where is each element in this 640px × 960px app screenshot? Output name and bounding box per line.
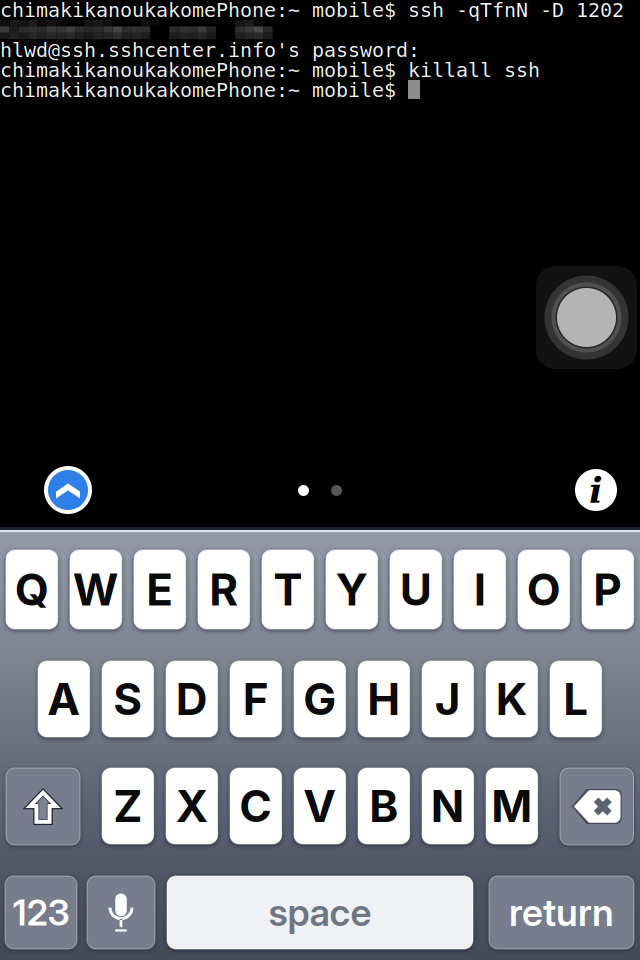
button[interactable]: Dictation <box>87 876 155 949</box>
staticText: i <box>589 469 603 511</box>
button[interactable]: 123 <box>5 876 77 949</box>
button[interactable]: D <box>166 661 218 737</box>
button[interactable]: V <box>294 768 346 844</box>
staticText: chimakikanoukakomePhone:~ mobile$ ssh -q… <box>0 0 624 22</box>
button[interactable]: G <box>294 661 346 737</box>
staticText: chimakikanoukakomePhone:~ mobile$ <box>0 78 396 102</box>
staticText: return <box>509 890 614 935</box>
staticText: C <box>239 779 272 833</box>
staticText: O <box>527 563 561 616</box>
staticText: K <box>496 672 528 726</box>
staticText: A <box>47 672 80 726</box>
button[interactable]: R <box>198 550 250 629</box>
button[interactable]: Z <box>102 768 154 844</box>
staticText: E <box>146 563 173 616</box>
staticText: V <box>303 779 336 833</box>
button[interactable]: U <box>390 550 442 629</box>
button[interactable]: B <box>358 768 410 844</box>
staticText: U <box>400 563 432 616</box>
button[interactable]: space <box>167 876 473 949</box>
staticText: Q <box>15 563 49 616</box>
staticText: L <box>563 672 588 726</box>
staticText: Y <box>336 563 368 616</box>
staticText: T <box>273 563 302 616</box>
button[interactable]: J <box>422 661 474 737</box>
button[interactable]: T <box>262 550 314 629</box>
staticText: space <box>268 890 371 935</box>
staticText: N <box>431 779 465 833</box>
button[interactable]: return <box>489 876 634 949</box>
staticText: J <box>435 672 461 726</box>
staticText: D <box>176 672 208 726</box>
staticText: X <box>176 779 208 833</box>
button[interactable]: Delete <box>560 768 633 845</box>
button[interactable]: A <box>38 661 90 737</box>
button[interactable]: C <box>230 768 282 844</box>
staticText: chimakikanoukakomePhone:~ mobile$ killal… <box>0 58 540 82</box>
button[interactable]: Q <box>6 550 58 629</box>
staticText: G <box>303 672 336 726</box>
button[interactable]: E <box>134 550 186 629</box>
button[interactable]: AssistiveTouch <box>536 266 637 369</box>
button[interactable]: Show keyboard accessory <box>44 466 92 514</box>
staticText: 123 <box>12 891 69 934</box>
button[interactable]: S <box>102 661 154 737</box>
staticText: M <box>491 779 532 833</box>
button[interactable]: H <box>358 661 410 737</box>
staticText: F <box>243 672 269 726</box>
button[interactable]: L <box>550 661 602 737</box>
button[interactable]: F <box>230 661 282 737</box>
button[interactable]: M <box>486 768 538 844</box>
button[interactable]: N <box>422 768 474 844</box>
button[interactable]: O <box>518 550 570 629</box>
staticText: W <box>73 563 119 616</box>
button[interactable]: I <box>454 550 506 629</box>
staticText: R <box>209 563 238 616</box>
staticText: Z <box>113 779 142 833</box>
button[interactable]: Shift <box>6 768 80 845</box>
button[interactable]: X <box>166 768 218 844</box>
button[interactable]: P <box>582 550 634 629</box>
staticText: H <box>367 672 400 726</box>
staticText: B <box>369 779 398 833</box>
staticText: hlwd@ssh.sshcenter.info's password: <box>0 38 420 62</box>
staticText: I <box>474 563 486 616</box>
button[interactable]: Y <box>326 550 378 629</box>
staticText: S <box>113 672 142 726</box>
button[interactable]: K <box>486 661 538 737</box>
button[interactable]: W <box>70 550 122 629</box>
staticText: P <box>593 563 622 616</box>
button[interactable]: Info <box>575 469 617 511</box>
